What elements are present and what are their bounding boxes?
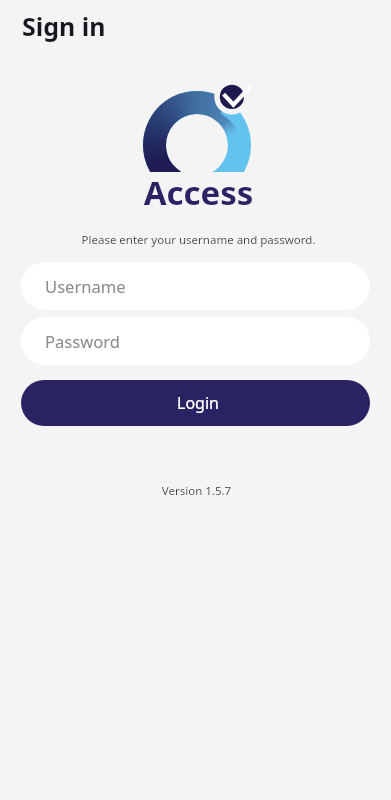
button[interactable]: Password xyxy=(21,317,370,365)
staticText: Login xyxy=(177,392,219,414)
button[interactable]: Login xyxy=(21,380,370,426)
staticText: Password xyxy=(45,330,121,353)
staticText: Sign in xyxy=(22,9,106,43)
staticText: Username xyxy=(45,275,126,298)
staticText: Version 1.5.7 xyxy=(1,483,391,499)
staticText: Please enter your username and password. xyxy=(3,232,391,248)
button[interactable]: Username xyxy=(21,262,370,310)
staticText: Access xyxy=(3,170,391,215)
